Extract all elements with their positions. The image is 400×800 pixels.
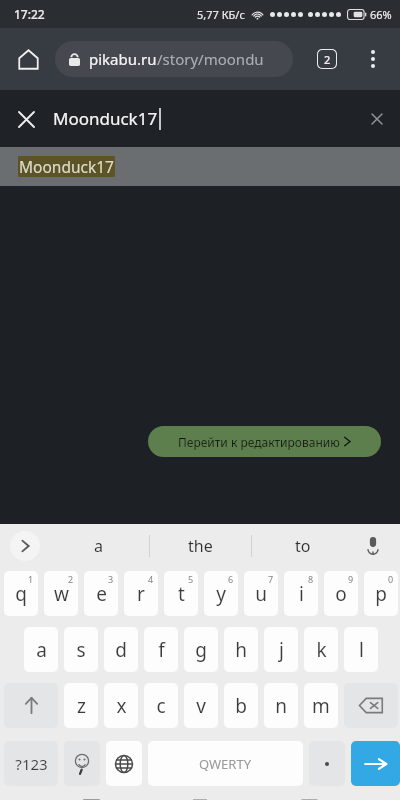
staticText: x xyxy=(116,693,127,719)
staticText: t xyxy=(178,581,185,607)
staticText: b xyxy=(235,693,247,719)
button[interactable]: r xyxy=(124,571,158,616)
button[interactable]: Tabs xyxy=(310,42,344,76)
staticText: a xyxy=(36,637,47,663)
staticText: 1 xyxy=(28,573,34,585)
staticText: f xyxy=(158,637,165,663)
button[interactable]: Перейти к редактированию xyxy=(148,426,381,457)
staticText: z xyxy=(77,693,86,719)
staticText: to xyxy=(295,535,311,557)
button[interactable]: x xyxy=(104,683,138,728)
staticText: 0 xyxy=(388,573,394,585)
staticText: e xyxy=(96,581,107,607)
staticText: q xyxy=(15,581,27,607)
staticText: k xyxy=(316,637,327,663)
button[interactable]: i xyxy=(284,571,318,616)
staticText: v xyxy=(196,693,206,719)
button[interactable]: Backspace xyxy=(344,683,398,728)
button[interactable]: n xyxy=(264,683,298,728)
button[interactable]: z xyxy=(64,683,98,728)
staticText: 66% xyxy=(370,7,392,22)
staticText: d xyxy=(115,637,127,663)
staticText: w xyxy=(54,581,69,607)
button[interactable]: v xyxy=(184,683,218,728)
staticText: Moonduck17 xyxy=(19,156,114,177)
button[interactable]: m xyxy=(304,683,338,728)
button[interactable]: w xyxy=(44,571,78,616)
button[interactable]: q xyxy=(4,571,38,616)
button[interactable]: Clear text xyxy=(360,102,394,136)
button[interactable]: Close find bar xyxy=(6,99,46,139)
staticText: 9 xyxy=(348,573,354,585)
staticText: pikabu.ru xyxy=(89,49,157,69)
button[interactable]: pikabu.ru xyxy=(55,41,293,77)
button[interactable]: e xyxy=(84,571,118,616)
staticText: a xyxy=(94,535,103,557)
button[interactable]: t xyxy=(164,571,198,616)
button[interactable]: p xyxy=(364,571,398,616)
button[interactable]: Voice input xyxy=(356,529,390,563)
button[interactable]: b xyxy=(224,683,258,728)
staticText: l xyxy=(359,637,364,663)
staticText: c xyxy=(156,693,166,719)
button[interactable]: Enter xyxy=(351,741,400,786)
staticText: 8 xyxy=(308,573,314,585)
button[interactable]: a xyxy=(48,524,149,568)
staticText: g xyxy=(195,637,207,663)
button[interactable]: d xyxy=(104,627,138,672)
staticText: 2 xyxy=(68,573,74,585)
button[interactable]: QWERTY xyxy=(148,741,303,786)
button[interactable]: More options xyxy=(354,40,392,78)
button[interactable]: h xyxy=(224,627,258,672)
button[interactable]: Change language xyxy=(106,741,142,786)
button[interactable]: l xyxy=(344,627,378,672)
staticText: j xyxy=(279,637,284,663)
staticText: Moonduck17 xyxy=(53,107,158,130)
staticText: the xyxy=(188,535,213,557)
staticText: QWERTY xyxy=(199,755,252,773)
staticText: y xyxy=(216,581,226,607)
staticText: s xyxy=(76,637,86,663)
button[interactable]: k xyxy=(304,627,338,672)
button[interactable]: the xyxy=(150,524,251,568)
staticText: 5,77 КБ/с xyxy=(197,7,245,22)
button[interactable]: u xyxy=(244,571,278,616)
button[interactable]: y xyxy=(204,571,238,616)
button[interactable]: s xyxy=(64,627,98,672)
button[interactable]: Expand suggestions xyxy=(10,531,40,561)
staticText: ?123 xyxy=(15,754,48,774)
button[interactable]: c xyxy=(144,683,178,728)
staticText: /story/moondu xyxy=(157,49,264,69)
button[interactable]: Home xyxy=(8,39,48,79)
staticText: m xyxy=(312,693,330,719)
button[interactable]: Emoji xyxy=(64,741,100,786)
staticText: 3 xyxy=(108,573,114,585)
button[interactable]: o xyxy=(324,571,358,616)
staticText: r xyxy=(137,581,145,607)
button[interactable]: to xyxy=(252,524,353,568)
staticText: 6 xyxy=(228,573,234,585)
button[interactable]: Period xyxy=(309,741,345,786)
staticText: Перейти к редактированию xyxy=(178,434,340,450)
button[interactable]: ?123 xyxy=(4,741,58,786)
button[interactable]: a xyxy=(24,627,58,672)
staticText: p xyxy=(375,581,387,607)
button[interactable]: Shift xyxy=(4,683,58,728)
button[interactable]: j xyxy=(264,627,298,672)
staticText: 17:22 xyxy=(14,6,45,22)
staticText: o xyxy=(335,581,347,607)
staticText: 7 xyxy=(268,573,274,585)
staticText: u xyxy=(255,581,267,607)
staticText: 2 xyxy=(324,52,331,67)
button[interactable]: g xyxy=(184,627,218,672)
staticText: 5 xyxy=(188,573,194,585)
staticText: i xyxy=(299,581,304,607)
staticText: h xyxy=(235,637,247,663)
staticText: 4 xyxy=(148,573,154,585)
button[interactable]: f xyxy=(144,627,178,672)
staticText: n xyxy=(275,693,287,719)
